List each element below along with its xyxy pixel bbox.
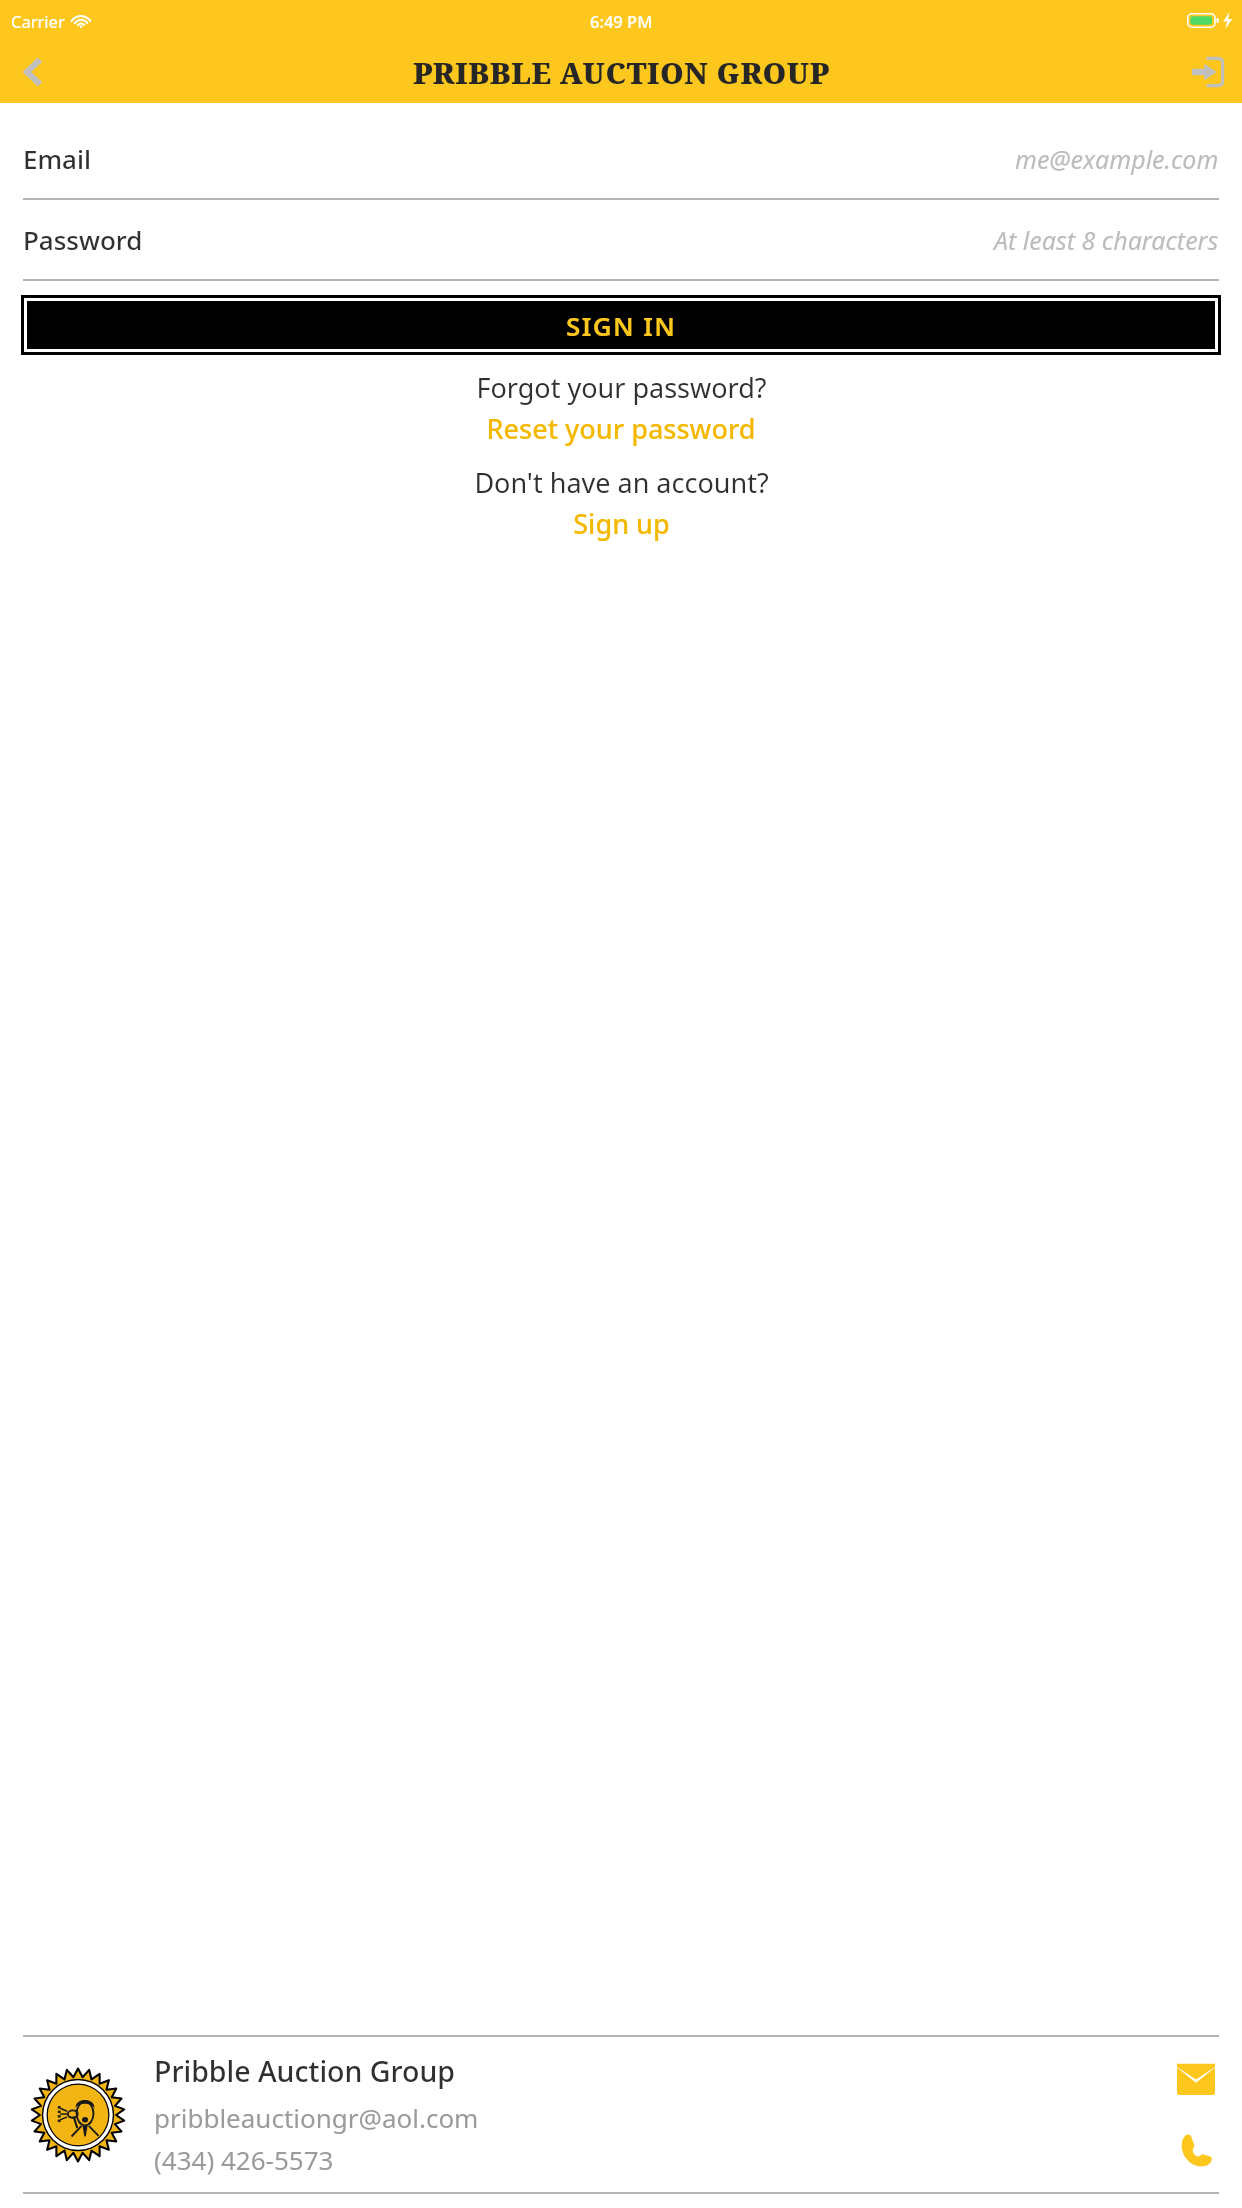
staticText: Pribble Auction Group bbox=[154, 2052, 455, 2091]
staticText: Don't have an account? bbox=[474, 464, 769, 501]
button[interactable]: Call bbox=[1173, 2126, 1219, 2172]
button[interactable]: Sign in bbox=[1180, 45, 1234, 99]
staticText: Carrier bbox=[11, 10, 65, 32]
staticText: Sign up bbox=[573, 505, 670, 542]
staticText: 6:49 PM bbox=[590, 10, 653, 32]
staticText: Forgot your password? bbox=[476, 369, 767, 406]
button[interactable]: Reset your password bbox=[486, 410, 756, 447]
staticText: pribbleauctiongr@aol.com bbox=[154, 2100, 479, 2135]
button[interactable]: Email bbox=[0, 119, 1242, 200]
staticText: me@example.com bbox=[1015, 142, 1219, 176]
staticText: PRIBBLE AUCTION GROUP bbox=[413, 53, 830, 92]
staticText: (434) 426-5573 bbox=[154, 2142, 334, 2177]
staticText: Reset your password bbox=[486, 410, 756, 447]
button[interactable]: Back bbox=[6, 45, 60, 99]
staticText: Email bbox=[23, 141, 92, 176]
staticText: At least 8 characters bbox=[994, 223, 1219, 257]
button[interactable]: Email bbox=[1173, 2058, 1219, 2104]
button[interactable]: SIGN IN bbox=[27, 301, 1215, 349]
button[interactable]: Sign up bbox=[573, 505, 670, 542]
staticText: SIGN IN bbox=[566, 308, 677, 343]
staticText: Password bbox=[23, 222, 143, 257]
button[interactable]: Password bbox=[0, 200, 1242, 281]
